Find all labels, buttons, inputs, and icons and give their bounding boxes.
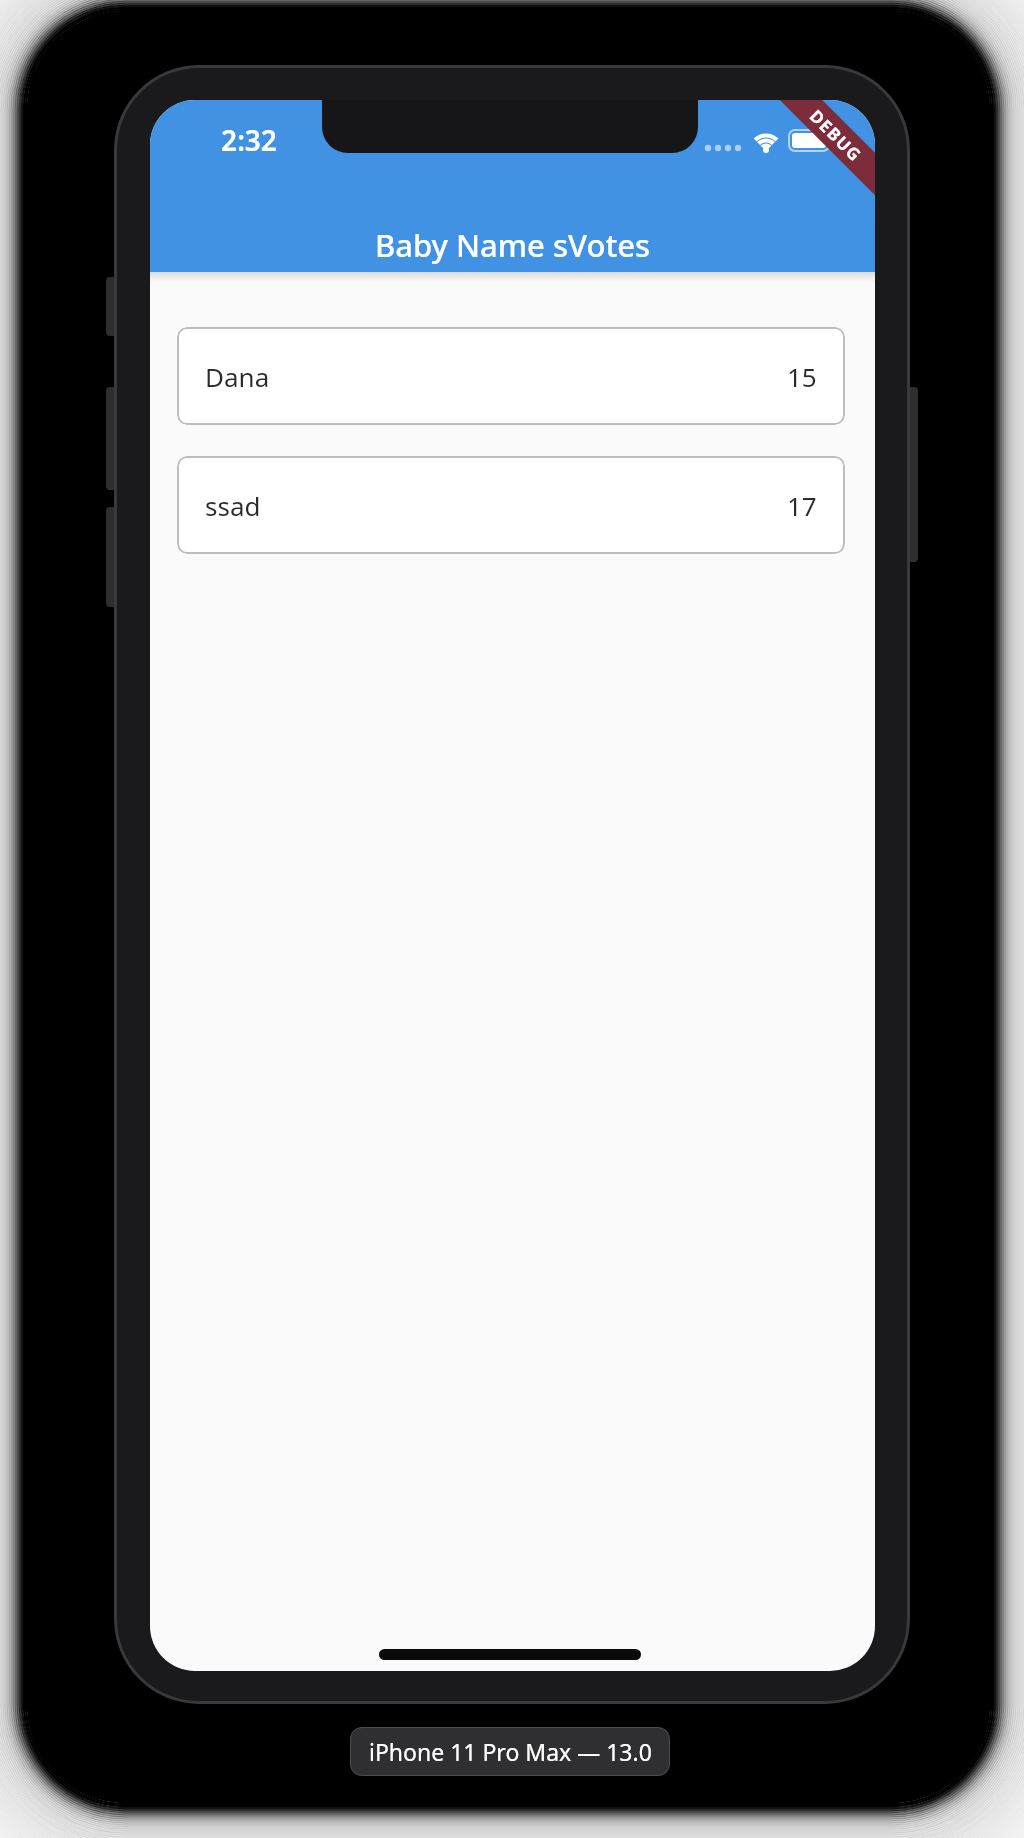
staticText: iPhone 11 Pro Max — 13.0 (369, 1736, 652, 1767)
staticText: Baby Name sVotes (150, 224, 875, 266)
staticText: DEBUG (805, 105, 867, 167)
staticText: 2:32 (164, 121, 334, 159)
button[interactable]: ssad (177, 456, 845, 554)
staticText: Dana (205, 359, 270, 394)
staticText: ssad (205, 488, 261, 523)
button[interactable]: Dana (177, 327, 845, 425)
staticText: 17 (787, 488, 817, 523)
staticText: 15 (787, 359, 817, 394)
